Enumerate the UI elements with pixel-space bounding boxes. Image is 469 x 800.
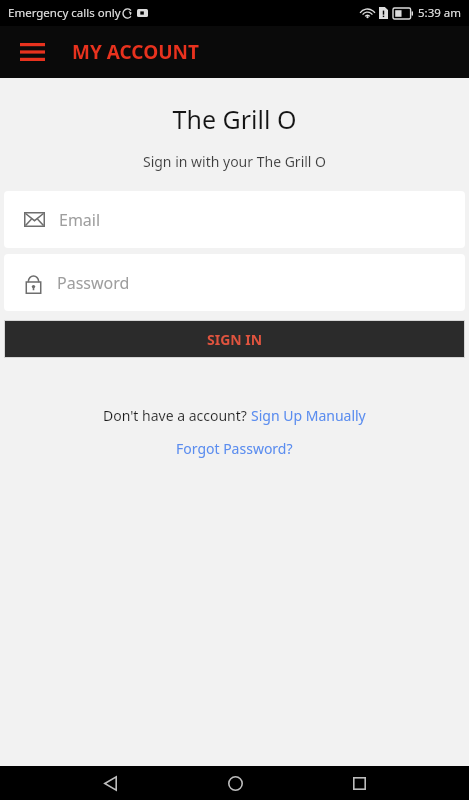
staticText: Forgot Password?: [176, 439, 293, 458]
button[interactable]: Email: [4, 191, 465, 248]
button[interactable]: SIGN IN: [4, 320, 465, 358]
staticText: Email: [59, 209, 101, 231]
staticText: MY ACCOUNT: [72, 39, 199, 65]
button[interactable]: Sign Up Manually: [251, 406, 366, 425]
staticText: SIGN IN: [207, 330, 263, 349]
staticText: Sign in with your The Grill O: [0, 152, 469, 171]
button[interactable]: Password: [4, 254, 465, 311]
button[interactable]: Recent apps: [337, 766, 381, 800]
staticText: 5:39 am: [418, 5, 462, 21]
staticText: The Grill O: [0, 102, 469, 136]
button[interactable]: Open navigation menu: [8, 28, 56, 76]
button[interactable]: Home: [213, 766, 257, 800]
button[interactable]: Forgot Password?: [176, 439, 293, 458]
staticText: Sign Up Manually: [251, 406, 366, 425]
staticText: Password: [57, 272, 130, 294]
button[interactable]: Back: [88, 766, 132, 800]
staticText: Don't have a account?: [103, 406, 251, 425]
staticText: Emergency calls only: [8, 5, 121, 21]
